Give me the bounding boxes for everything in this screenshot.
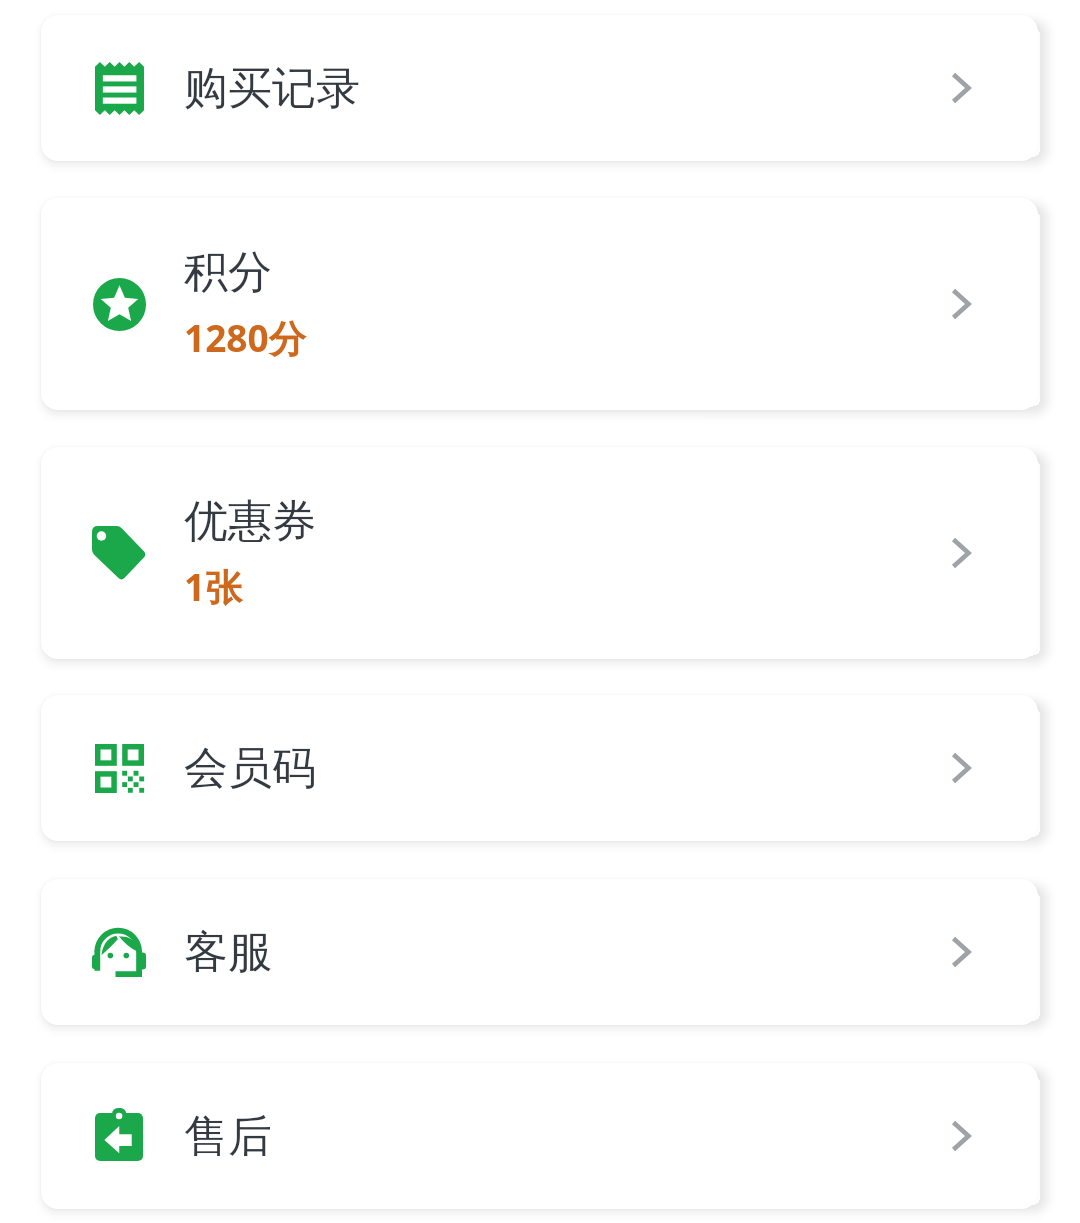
staticText: 1280分 [184,312,306,363]
button[interactable]: 积分 [41,198,1038,410]
other: 打开售后 [951,1120,971,1152]
button[interactable]: 售后 [41,1063,1038,1209]
button[interactable]: 优惠券 [41,447,1038,659]
staticText: 购买记录 [184,61,360,116]
other: 打开客服 [951,936,971,968]
staticText: 售后 [184,1109,272,1164]
other: 打开优惠券 [951,537,971,569]
staticText: 客服 [184,925,272,980]
button[interactable]: 客服 [41,879,1038,1025]
staticText: 优惠券 [184,494,316,549]
other: 打开积分 [951,288,971,320]
staticText: 会员码 [184,741,316,796]
other: 打开购买记录 [951,72,971,104]
staticText: 积分 [184,245,272,300]
button[interactable]: 会员码 [41,695,1038,841]
other: 打开会员码 [951,752,971,784]
button[interactable]: 购买记录 [41,15,1038,161]
staticText: 1张 [184,561,243,612]
